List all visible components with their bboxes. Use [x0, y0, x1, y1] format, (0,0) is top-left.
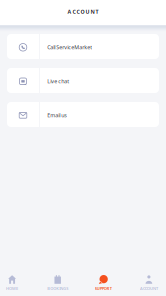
button[interactable]: BOOKINGS [47, 275, 69, 292]
staticText: Call ServiceMarket [47, 44, 92, 51]
button[interactable]: SUPPORT [92, 275, 114, 292]
button[interactable]: Call ServiceMarket [7, 34, 159, 59]
staticText: HOME [6, 286, 18, 291]
staticText: Email us [47, 112, 67, 119]
staticText: SUPPORT [95, 286, 112, 291]
staticText: Live chat [47, 78, 69, 85]
staticText: A C C O U N T [67, 8, 98, 15]
button[interactable]: Live chat [7, 68, 159, 93]
staticText: BOOKINGS [47, 286, 68, 291]
staticText: ACCOUNT [140, 286, 158, 291]
button[interactable]: Email us [7, 102, 159, 127]
button[interactable]: HOME [1, 275, 23, 292]
button[interactable]: ACCOUNT [138, 275, 160, 292]
